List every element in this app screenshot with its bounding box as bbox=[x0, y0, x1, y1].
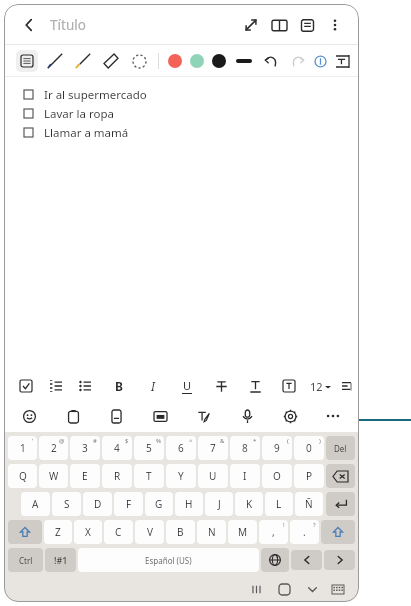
button[interactable]: , bbox=[259, 520, 288, 544]
button[interactable]: O bbox=[262, 464, 292, 488]
button[interactable]: More options bbox=[321, 11, 349, 39]
staticText: U bbox=[183, 378, 192, 393]
button[interactable]: T bbox=[134, 464, 164, 488]
button[interactable]: B bbox=[166, 520, 195, 544]
button[interactable]: G bbox=[145, 492, 173, 516]
staticText: R bbox=[114, 469, 121, 483]
button[interactable]: Green color bbox=[190, 54, 204, 68]
button[interactable]: Lavar la ropa bbox=[24, 104, 359, 123]
button[interactable]: Español (US) bbox=[78, 548, 259, 572]
button[interactable]: 9 bbox=[262, 436, 292, 460]
button[interactable]: W bbox=[39, 464, 68, 488]
button[interactable]: Y bbox=[166, 464, 196, 488]
button[interactable]: !#1 bbox=[45, 548, 76, 572]
button[interactable]: Backspace bbox=[326, 464, 355, 488]
button[interactable]: 8 bbox=[230, 436, 260, 460]
button[interactable]: J bbox=[205, 492, 233, 516]
button[interactable]: Ñ bbox=[295, 492, 323, 516]
staticText: Llamar a mamá bbox=[44, 125, 129, 141]
button[interactable]: Text color bbox=[244, 375, 266, 397]
button[interactable]: Text style bbox=[278, 375, 300, 397]
button[interactable]: Hide keyboard bbox=[301, 578, 323, 600]
button[interactable]: Bold bbox=[108, 375, 130, 397]
button[interactable]: Settings bbox=[277, 403, 303, 429]
button[interactable]: Home bbox=[273, 578, 295, 600]
button[interactable]: D bbox=[83, 492, 112, 516]
button[interactable]: Next bbox=[324, 550, 355, 570]
button[interactable]: Italic bbox=[142, 375, 164, 397]
button[interactable]: I bbox=[230, 464, 260, 488]
button[interactable]: Ir al supermercado bbox=[24, 85, 359, 104]
button[interactable]: Clipboard bbox=[60, 403, 86, 429]
button[interactable]: Numbered list bbox=[46, 376, 66, 396]
button[interactable]: Pen bbox=[44, 50, 66, 72]
button[interactable]: Text mode bbox=[16, 50, 38, 72]
button[interactable]: Sticker bbox=[103, 403, 129, 429]
button[interactable]: Checklist bbox=[15, 375, 37, 397]
button[interactable]: Redo bbox=[287, 50, 309, 72]
button[interactable]: Voice input bbox=[234, 403, 260, 429]
staticText: W bbox=[49, 469, 59, 483]
button[interactable]: Ctrl bbox=[8, 548, 43, 572]
button[interactable]: Underline bbox=[176, 375, 198, 397]
button[interactable]: 1 bbox=[8, 436, 37, 460]
button[interactable]: N bbox=[197, 520, 226, 544]
staticText: P bbox=[306, 469, 313, 483]
button[interactable]: 0 bbox=[294, 436, 324, 460]
button[interactable]: 2 bbox=[39, 436, 68, 460]
staticText: % bbox=[156, 437, 161, 445]
button[interactable]: C bbox=[104, 520, 133, 544]
button[interactable]: A bbox=[21, 492, 50, 516]
button[interactable]: Llamar a mamá bbox=[24, 123, 359, 142]
button[interactable]: Undo bbox=[260, 50, 282, 72]
button[interactable]: U bbox=[198, 464, 228, 488]
button[interactable]: L bbox=[265, 492, 293, 516]
button[interactable]: E bbox=[70, 464, 100, 488]
button[interactable]: Enter bbox=[326, 492, 355, 516]
button[interactable]: Black color bbox=[212, 54, 226, 68]
button[interactable]: Expand bbox=[237, 11, 265, 39]
button[interactable]: 5 bbox=[134, 436, 164, 460]
button[interactable]: . bbox=[290, 520, 319, 544]
button[interactable]: Language bbox=[261, 548, 289, 572]
button[interactable]: Previous bbox=[291, 550, 322, 570]
button[interactable]: More bbox=[321, 404, 345, 428]
button[interactable]: Text extract bbox=[336, 50, 349, 72]
button[interactable]: Back bbox=[14, 10, 44, 40]
button[interactable]: Eraser bbox=[100, 50, 122, 72]
button[interactable]: 6 bbox=[166, 436, 196, 460]
button[interactable]: Recents bbox=[245, 578, 267, 600]
button[interactable]: Bulleted list bbox=[75, 376, 95, 396]
button[interactable]: S bbox=[52, 492, 81, 516]
button[interactable]: 3 bbox=[70, 436, 100, 460]
button[interactable]: Book view bbox=[265, 11, 293, 39]
button[interactable]: V bbox=[135, 520, 164, 544]
button[interactable]: K bbox=[235, 492, 263, 516]
button[interactable]: Red color bbox=[168, 54, 182, 68]
button[interactable]: P bbox=[294, 464, 324, 488]
button[interactable]: R bbox=[102, 464, 132, 488]
button[interactable]: Strikethrough bbox=[210, 375, 232, 397]
button[interactable]: Emoji bbox=[16, 403, 42, 429]
button[interactable]: Page view bbox=[293, 11, 321, 39]
button[interactable]: Keyboard bbox=[327, 578, 349, 600]
button[interactable]: Q bbox=[8, 464, 37, 488]
button[interactable]: Handwriting bbox=[190, 403, 216, 429]
button[interactable]: Image bbox=[147, 403, 173, 429]
button[interactable]: Lasso select bbox=[128, 50, 150, 72]
button[interactable]: Shift bbox=[8, 520, 42, 544]
button[interactable]: 7 bbox=[198, 436, 228, 460]
button[interactable]: X bbox=[74, 520, 102, 544]
button[interactable]: H bbox=[175, 492, 203, 516]
button[interactable]: 4 bbox=[102, 436, 132, 460]
button[interactable]: Shift bbox=[321, 520, 355, 544]
button[interactable]: 12 bbox=[310, 379, 331, 394]
button[interactable]: Highlighter bbox=[72, 50, 94, 72]
button[interactable]: Z bbox=[44, 520, 72, 544]
button[interactable]: Alignment bbox=[342, 380, 351, 392]
button[interactable]: M bbox=[228, 520, 257, 544]
button[interactable]: Stroke width bbox=[235, 50, 253, 72]
button[interactable]: F bbox=[114, 492, 143, 516]
button[interactable]: Delete bbox=[326, 436, 355, 460]
button[interactable]: Convert handwriting bbox=[309, 50, 331, 72]
